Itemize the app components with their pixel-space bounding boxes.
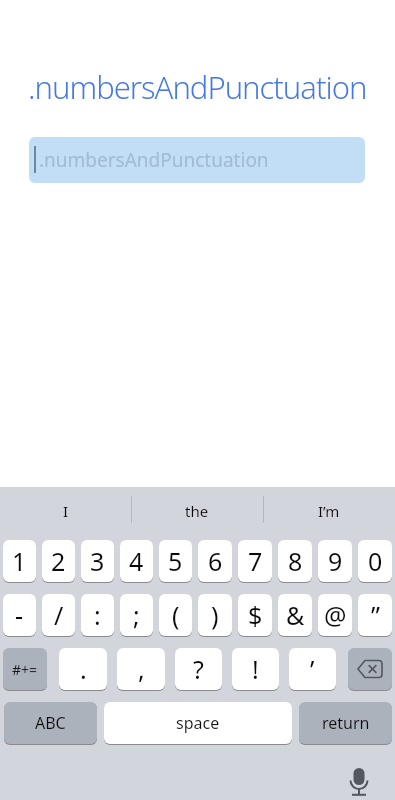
staticText: 9 bbox=[328, 544, 343, 578]
staticText: 6 bbox=[208, 544, 223, 578]
button[interactable]: 9 bbox=[318, 540, 352, 583]
button[interactable]: @ bbox=[318, 594, 352, 637]
staticText: #+= bbox=[12, 660, 38, 679]
staticText: ! bbox=[252, 652, 259, 686]
button[interactable]: 8 bbox=[278, 540, 312, 583]
staticText: ( bbox=[172, 598, 180, 632]
button[interactable]: 5 bbox=[159, 540, 192, 583]
button[interactable]: #+= bbox=[3, 648, 47, 691]
button[interactable]: - bbox=[3, 594, 36, 637]
staticText: I’m bbox=[318, 501, 340, 521]
button[interactable]: I’m bbox=[263, 487, 395, 534]
staticText: & bbox=[286, 598, 305, 632]
staticText: 8 bbox=[288, 544, 303, 578]
staticText: @ bbox=[324, 598, 347, 632]
button[interactable]: ” bbox=[358, 594, 392, 637]
button[interactable]: . bbox=[59, 648, 107, 691]
button[interactable]: ABC bbox=[4, 702, 97, 745]
button[interactable]: 1 bbox=[3, 540, 36, 583]
staticText: 7 bbox=[248, 544, 263, 578]
staticText: ; bbox=[133, 598, 140, 632]
staticText: 3 bbox=[90, 544, 105, 578]
button[interactable]: , bbox=[117, 648, 165, 691]
button[interactable]: ; bbox=[120, 594, 153, 637]
staticText: $ bbox=[248, 598, 263, 632]
staticText: - bbox=[15, 598, 24, 632]
button[interactable]: / bbox=[42, 594, 75, 637]
staticText: I bbox=[63, 501, 69, 521]
button[interactable]: return bbox=[299, 702, 392, 745]
button[interactable]: 3 bbox=[81, 540, 114, 583]
button[interactable]: space bbox=[104, 702, 292, 745]
staticText: ” bbox=[371, 598, 380, 632]
button[interactable]: ! bbox=[232, 648, 279, 691]
button[interactable]: I bbox=[0, 487, 131, 534]
staticText: 4 bbox=[129, 544, 144, 578]
staticText: .numbersAndPunctuation bbox=[28, 66, 367, 108]
button[interactable]: 4 bbox=[120, 540, 153, 583]
staticText: 5 bbox=[168, 544, 183, 578]
staticText: 0 bbox=[368, 544, 383, 578]
button[interactable]: ’ bbox=[289, 648, 336, 691]
button[interactable]: $ bbox=[238, 594, 272, 637]
staticText: ? bbox=[193, 652, 204, 686]
staticText: : bbox=[94, 598, 101, 632]
button[interactable]: 0 bbox=[358, 540, 392, 583]
staticText: ’ bbox=[310, 652, 315, 686]
staticText: / bbox=[54, 598, 64, 632]
button[interactable]: : bbox=[81, 594, 114, 637]
button[interactable]: & bbox=[278, 594, 312, 637]
staticText: return bbox=[322, 712, 370, 734]
button[interactable]: 7 bbox=[238, 540, 272, 583]
staticText: .numbersAndPunctuation bbox=[39, 147, 269, 173]
button[interactable]: ? bbox=[175, 648, 222, 691]
staticText: the bbox=[185, 501, 209, 521]
staticText: . bbox=[80, 652, 87, 686]
button[interactable] bbox=[348, 648, 392, 691]
button[interactable]: 2 bbox=[42, 540, 75, 583]
staticText: 2 bbox=[51, 544, 66, 578]
staticText: space bbox=[176, 712, 220, 734]
button[interactable]: .numbersAndPunctuation bbox=[29, 137, 365, 183]
button[interactable]: 6 bbox=[198, 540, 232, 583]
staticText: 1 bbox=[12, 544, 27, 578]
staticText: ) bbox=[211, 598, 219, 632]
button[interactable] bbox=[349, 768, 369, 796]
staticText: , bbox=[138, 652, 145, 686]
button[interactable]: the bbox=[131, 487, 263, 534]
staticText: ABC bbox=[35, 712, 66, 734]
button[interactable]: ) bbox=[198, 594, 232, 637]
button[interactable]: ( bbox=[159, 594, 192, 637]
